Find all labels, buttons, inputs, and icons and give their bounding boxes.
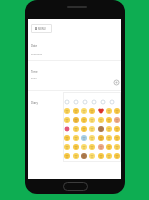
button[interactable]: Emoji <box>88 142 96 151</box>
button[interactable]: Emoji <box>80 124 88 133</box>
button[interactable]: Emoji <box>105 115 113 124</box>
button[interactable]: Emoji <box>63 106 71 115</box>
button[interactable]: Emoji <box>113 142 121 151</box>
button[interactable]: Emoji category 2 <box>71 98 80 105</box>
button[interactable]: Emoji <box>72 115 80 124</box>
button[interactable]: Emoji <box>97 124 105 133</box>
staticText: Time <box>31 70 38 74</box>
staticText: 07:04 <box>31 77 37 80</box>
button[interactable]: Emoji <box>88 106 96 115</box>
button[interactable]: Emoji <box>72 106 80 115</box>
button[interactable]: Emoji <box>80 133 88 142</box>
button[interactable]: Emoji <box>72 124 80 133</box>
button[interactable]: Emoji <box>63 133 71 142</box>
button[interactable]: Emoji <box>63 151 71 160</box>
button[interactable]: Emoji <box>80 106 88 115</box>
button[interactable]: Emoji <box>113 115 121 124</box>
staticText: 2018-02-03 <box>31 53 42 56</box>
button[interactable]: Emoji <box>63 124 71 133</box>
button[interactable]: Emoji <box>105 151 113 160</box>
staticText: Diary <box>31 101 38 105</box>
button[interactable]: Emoji category 5 <box>98 98 107 105</box>
button[interactable]: Emoji <box>113 124 121 133</box>
button[interactable]: MENU <box>31 24 52 33</box>
button[interactable]: Emoji <box>105 133 113 142</box>
button[interactable]: Emoji <box>113 106 121 115</box>
button[interactable]: Emoji <box>80 142 88 151</box>
button[interactable]: Emoji <box>88 151 96 160</box>
button[interactable]: Emoji <box>105 106 113 115</box>
button[interactable]: Emoji <box>80 115 88 124</box>
button[interactable]: Emoji <box>97 133 105 142</box>
button[interactable]: Emoji <box>113 151 121 160</box>
button[interactable]: Emoji <box>72 151 80 160</box>
button[interactable]: Emoji <box>105 142 113 151</box>
button[interactable]: Emoji <box>80 151 88 160</box>
button[interactable]: Emoji <box>72 142 80 151</box>
staticText: Date <box>31 44 38 48</box>
other: Home <box>63 182 88 191</box>
button[interactable]: Emoji <box>63 142 71 151</box>
staticText: MENU <box>38 27 46 31</box>
button[interactable]: Emoji category 6 <box>107 98 116 105</box>
button[interactable]: Emoji <box>88 115 96 124</box>
button[interactable]: Emoji <box>63 115 71 124</box>
button[interactable]: Pick time <box>113 79 119 85</box>
button[interactable]: Emoji <box>88 124 96 133</box>
button[interactable]: Emoji <box>72 133 80 142</box>
button[interactable]: Emoji category 3 <box>80 98 89 105</box>
button[interactable]: Emoji category 1 <box>62 98 71 105</box>
button[interactable]: Emoji <box>97 115 105 124</box>
button[interactable]: Emoji <box>113 133 121 142</box>
button[interactable]: Emoji <box>97 106 105 115</box>
button[interactable]: Emoji category 4 <box>89 98 98 105</box>
button[interactable]: Emoji <box>97 142 105 151</box>
button[interactable]: Emoji <box>105 124 113 133</box>
button[interactable]: Emoji <box>88 133 96 142</box>
button[interactable]: Emoji <box>97 151 105 160</box>
